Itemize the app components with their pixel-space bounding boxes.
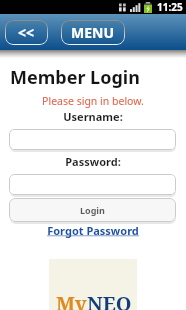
staticText: << (18, 23, 35, 42)
button[interactable]: Back (5, 20, 48, 45)
staticText: Password: (0, 154, 186, 169)
button[interactable] (9, 129, 176, 150)
staticText: Please sign in below. (0, 94, 186, 108)
staticText: Username: (0, 109, 186, 124)
button[interactable] (9, 174, 176, 195)
staticText: 11:25 (157, 0, 183, 14)
staticText: MENU (71, 23, 115, 42)
staticText: My (56, 290, 87, 310)
staticText: Member Login (10, 65, 140, 90)
staticText: NEO (87, 290, 132, 310)
button[interactable]: Forgot Password (0, 223, 186, 238)
staticText: Login (80, 204, 105, 216)
button[interactable]: Login (9, 198, 176, 222)
button[interactable]: Menu (61, 20, 125, 45)
